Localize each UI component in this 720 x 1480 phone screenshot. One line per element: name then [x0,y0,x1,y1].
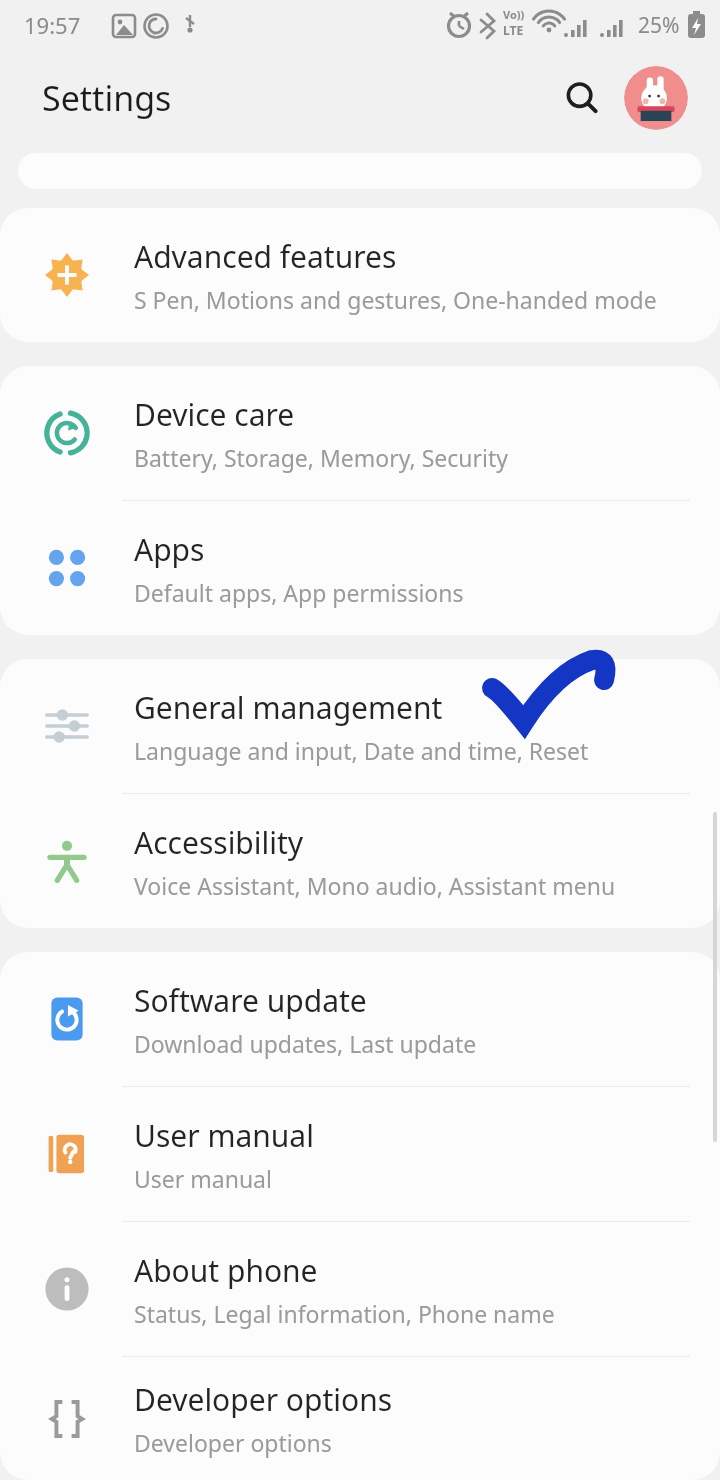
staticText: Software update [134,980,367,1021]
staticText: 25% [638,11,680,40]
staticText: Status, Legal information, Phone name [134,1298,555,1329]
staticText: Device care [134,394,295,435]
button[interactable]: Search [552,68,612,128]
staticText: Developer options [134,1379,393,1420]
button[interactable]: About phone [0,1222,720,1356]
button[interactable]: Device care [0,366,720,500]
staticText: General management [134,687,443,728]
staticText: Download updates, Last update [134,1028,477,1059]
staticText: 19:57 [24,10,81,40]
staticText: Battery, Storage, Memory, Security [134,442,508,473]
staticText: About phone [134,1250,318,1291]
staticText: User manual [134,1115,314,1156]
button[interactable]: User manual [0,1087,720,1221]
staticText: Advanced features [134,236,397,277]
staticText: Language and input, Date and time, Reset [134,735,589,766]
staticText: Accessibility [134,822,304,863]
button[interactable]: Advanced features [0,208,720,342]
staticText: User manual [134,1163,272,1194]
button[interactable]: General management [0,659,720,793]
button[interactable]: Apps [0,501,720,635]
staticText: Apps [134,529,205,570]
staticText: S Pen, Motions and gestures, One-handed … [134,284,657,315]
staticText: Vo)) [503,7,525,22]
button[interactable]: Profile [624,66,688,130]
staticText: Default apps, App permissions [134,577,464,608]
button[interactable]: Developer options [0,1357,720,1480]
button[interactable]: Software update [0,952,720,1086]
staticText: Settings [42,75,172,121]
button[interactable]: Accessibility [0,794,720,928]
staticText: Voice Assistant, Mono audio, Assistant m… [134,870,616,901]
staticText: Developer options [134,1427,332,1458]
staticText: LTE [503,22,524,38]
